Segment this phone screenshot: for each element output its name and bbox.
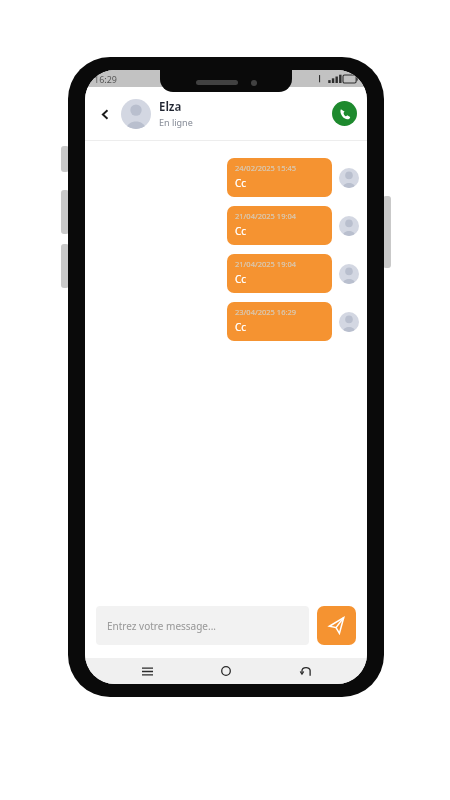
button[interactable]: 21/04/2025 19:04: [227, 206, 332, 245]
button[interactable]: Recent apps: [130, 658, 164, 684]
button[interactable]: 24/02/2025 15:45: [227, 158, 332, 197]
button[interactable]: 23/04/2025 16:29: [227, 302, 332, 341]
button[interactable]: 21/04/2025 19:04: [227, 254, 332, 293]
staticText: Elza: [159, 99, 182, 115]
button[interactable]: Entrez votre message...: [96, 606, 309, 645]
staticText: 16:29: [94, 73, 118, 85]
staticText: Cc: [235, 272, 247, 286]
staticText: 21/04/2025 19:04: [235, 259, 297, 269]
staticText: 24/02/2025 15:45: [235, 163, 297, 173]
staticText: En ligne: [159, 116, 193, 128]
button[interactable]: Back: [95, 104, 115, 124]
button[interactable]: Back: [288, 658, 322, 684]
staticText: 23/04/2025 16:29: [235, 307, 297, 317]
button[interactable]: Send: [317, 606, 356, 645]
staticText: Cc: [235, 224, 247, 238]
button[interactable]: Home: [209, 658, 243, 684]
staticText: 21/04/2025 19:04: [235, 211, 297, 221]
staticText: Cc: [235, 320, 247, 334]
staticText: Entrez votre message...: [107, 619, 217, 633]
button[interactable]: Call: [332, 101, 357, 126]
staticText: Cc: [235, 176, 247, 190]
